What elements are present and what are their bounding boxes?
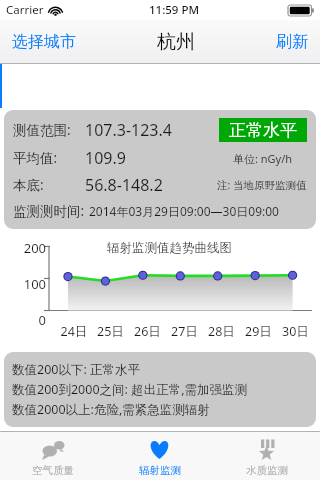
button[interactable]: 水质监测 — [213, 432, 320, 480]
staticText: 数值2000以上:危险,需紧急监测辐射 — [12, 401, 210, 418]
staticText: 28日 — [203, 323, 240, 340]
staticText: 测值范围: — [13, 121, 85, 139]
button[interactable]: 辐射监测 — [106, 432, 213, 480]
staticText: 数值200以下: 正常水平 — [12, 361, 141, 378]
staticText: 选择城市 — [12, 32, 76, 52]
staticText: 107.3-123.4 — [85, 119, 219, 141]
staticText: 109.9 — [85, 147, 219, 169]
staticText: 辐射监测 — [139, 464, 181, 477]
staticText: 100 — [4, 275, 46, 293]
staticText: 辐射监测值趋势曲线图 — [107, 240, 232, 256]
button[interactable]: 选择城市 — [10, 26, 78, 58]
staticText: 2014年03月29日09:00—30日09:00 — [89, 203, 279, 219]
other: 辐射监测 — [147, 437, 172, 462]
staticText: 空气质量 — [32, 464, 74, 477]
staticText: 平均值: — [13, 149, 85, 167]
staticText: 30日 — [277, 323, 314, 340]
staticText: 26日 — [129, 323, 166, 340]
staticText: 本底: — [13, 176, 85, 194]
staticText: 29日 — [240, 323, 277, 340]
staticText: 11:59 PM — [149, 2, 200, 18]
staticText: 单位: nGy/h — [233, 151, 293, 166]
other: 空气质量 — [41, 437, 66, 462]
staticText: 监测测时间: — [13, 202, 85, 220]
staticText: 水质监测 — [246, 464, 288, 477]
staticText: 27日 — [166, 323, 203, 340]
button[interactable]: 刷新 — [274, 26, 310, 58]
button[interactable]: 空气质量 — [0, 432, 106, 480]
staticText: 56.8-148.2 — [85, 174, 207, 196]
staticText: 数值200到2000之间: 超出正常,需加强监测 — [12, 381, 248, 398]
staticText: 25日 — [92, 323, 129, 340]
staticText: 24日 — [56, 323, 92, 340]
staticText: Carrier — [6, 2, 44, 18]
staticText: 刷新 — [276, 32, 308, 52]
staticText: 200 — [4, 239, 46, 257]
staticText: 0 — [4, 311, 46, 329]
staticText: 杭州 — [157, 30, 195, 54]
staticText: 正常水平 — [229, 120, 297, 141]
staticText: 注: 当地原野监测值 — [217, 178, 307, 192]
other: 水质监测 — [254, 437, 279, 462]
